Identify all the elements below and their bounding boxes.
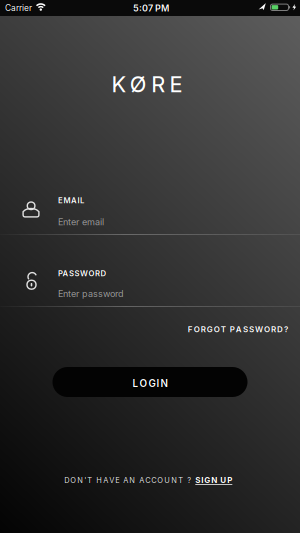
staticText: S I G N U P: [195, 475, 232, 485]
staticText: KØRE: [112, 71, 182, 97]
staticText: Enter password: [58, 288, 124, 299]
staticText: Carrier: [5, 3, 32, 13]
staticText: EMAIL: [58, 196, 84, 205]
staticText: L O G I N: [132, 377, 167, 389]
staticText: FORGOT PASSWORD?: [188, 324, 288, 334]
staticText: 5:07 PM: [133, 3, 169, 14]
staticText: DON'T HAVE AN ACCOUNT ?: [64, 476, 191, 485]
staticText: PASSWORD: [58, 269, 106, 278]
staticText: Enter email: [58, 216, 104, 227]
